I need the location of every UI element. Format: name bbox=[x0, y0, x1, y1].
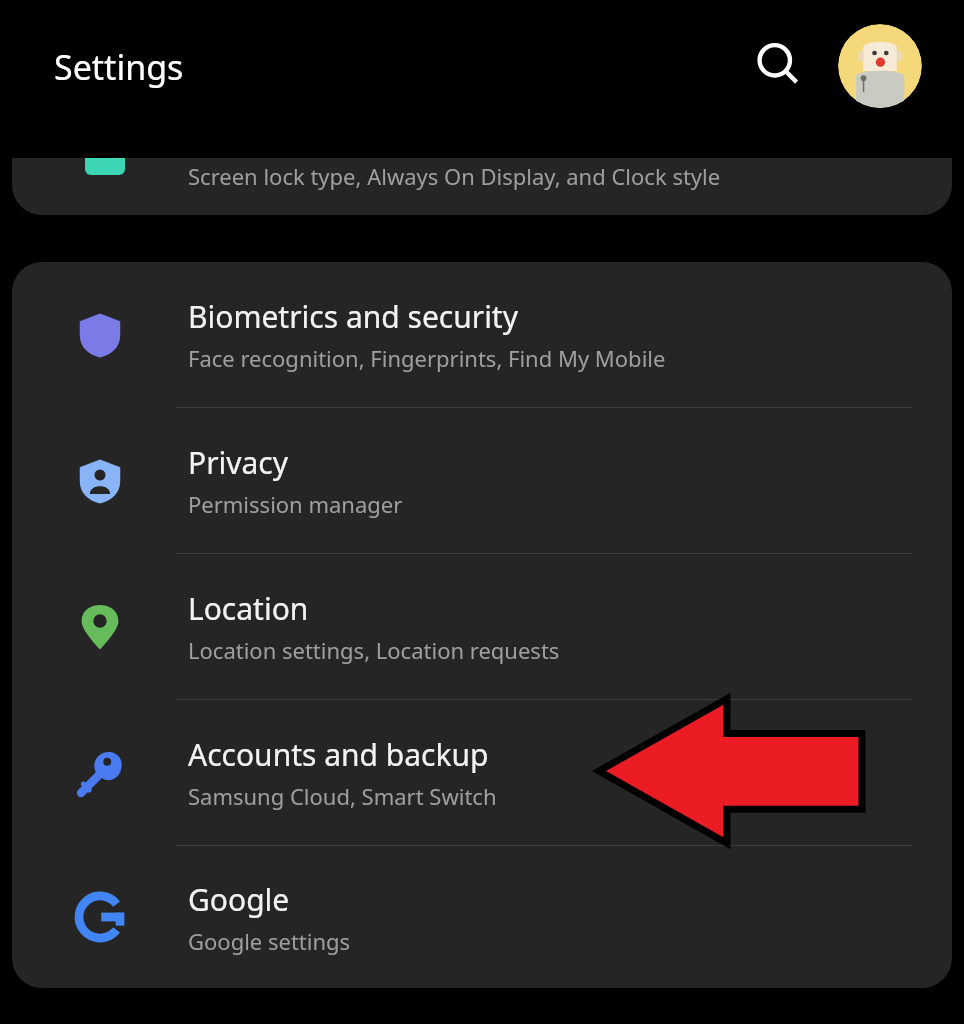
button[interactable]: Privacy bbox=[12, 408, 952, 553]
button[interactable]: Biometrics and security bbox=[12, 262, 952, 407]
staticText: Accounts and backup bbox=[188, 734, 489, 775]
staticText: Google settings bbox=[188, 926, 351, 956]
staticText: Google bbox=[188, 879, 290, 920]
staticText: Privacy bbox=[188, 442, 289, 483]
staticText: Biometrics and security bbox=[188, 296, 518, 337]
staticText: Permission manager bbox=[188, 489, 403, 519]
button[interactable]: Location bbox=[12, 554, 952, 699]
button[interactable]: Account bbox=[838, 24, 922, 108]
staticText: Settings bbox=[54, 44, 184, 90]
staticText: Samsung Cloud, Smart Switch bbox=[188, 781, 497, 811]
staticText: Face recognition, Fingerprints, Find My … bbox=[188, 343, 666, 373]
staticText: Location settings, Location requests bbox=[188, 635, 560, 665]
button[interactable]: Screen lock type, Always On Display, and… bbox=[12, 158, 952, 215]
button[interactable]: Accounts and backup bbox=[12, 700, 952, 845]
staticText: Location bbox=[188, 588, 309, 629]
staticText: Screen lock type, Always On Display, and… bbox=[188, 161, 721, 191]
button[interactable]: Google bbox=[12, 846, 952, 988]
button[interactable]: Search bbox=[745, 31, 811, 97]
